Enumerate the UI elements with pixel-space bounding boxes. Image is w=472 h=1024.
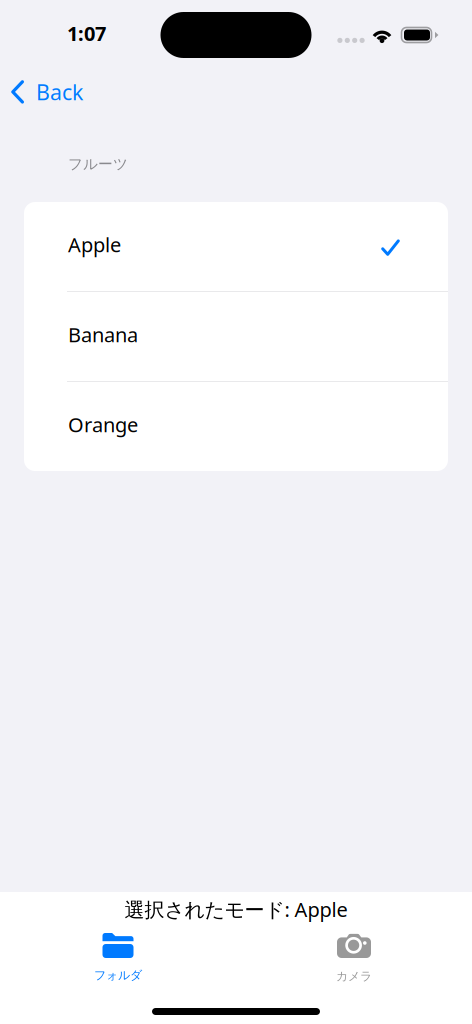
staticText: 選択されたモード: Apple <box>124 896 347 923</box>
button[interactable]: Apple <box>24 202 448 291</box>
button[interactable]: カメラ <box>236 933 472 993</box>
staticText: Orange <box>68 411 138 438</box>
staticText: フルーツ <box>68 155 128 173</box>
staticText: フォルダ <box>94 968 142 983</box>
button[interactable]: フォルダ <box>0 933 236 993</box>
staticText: Banana <box>68 321 138 348</box>
button[interactable]: Back <box>0 70 97 114</box>
staticText: Apple <box>68 231 121 258</box>
button[interactable]: Orange <box>24 382 448 471</box>
staticText: 1:07 <box>67 20 106 47</box>
staticText: カメラ <box>336 969 372 984</box>
staticText: Back <box>36 78 83 106</box>
button[interactable]: Banana <box>24 292 448 381</box>
